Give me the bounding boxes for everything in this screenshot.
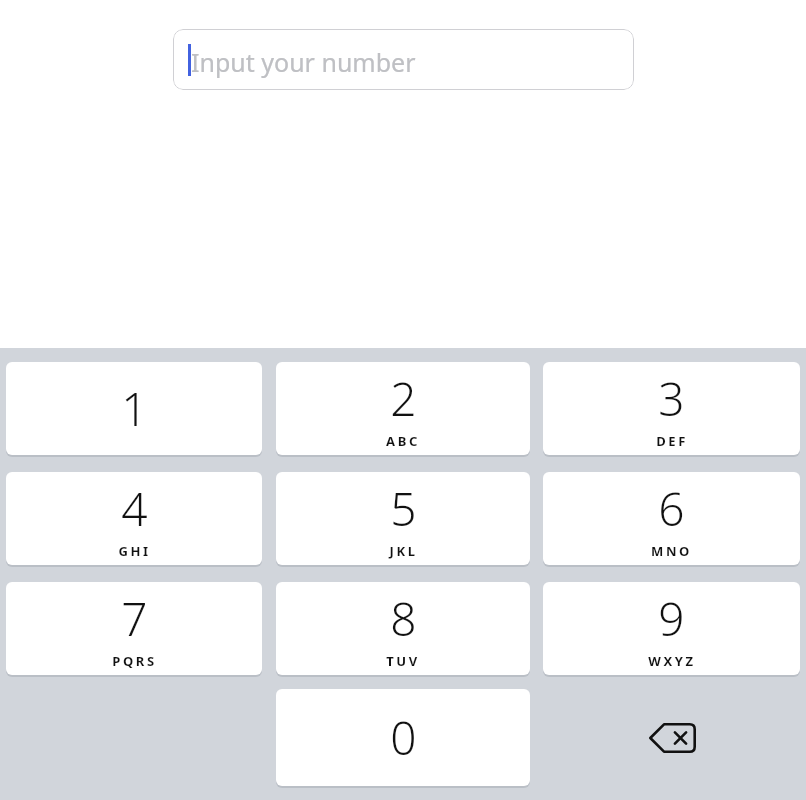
button[interactable]: 0 — [276, 689, 530, 786]
button[interactable]: 8 — [276, 582, 530, 675]
staticText: GHI — [118, 542, 151, 560]
staticText: 0 — [390, 706, 417, 769]
staticText: 8 — [390, 587, 417, 650]
staticText: 1 — [121, 377, 148, 440]
button[interactable]: 2 — [276, 362, 530, 455]
button[interactable]: 3 — [543, 362, 800, 455]
button[interactable]: 7 — [6, 582, 262, 675]
staticText: 5 — [390, 477, 417, 540]
button[interactable]: 9 — [543, 582, 800, 675]
button[interactable]: 1 — [6, 362, 262, 455]
button[interactable]: Backspace — [543, 689, 800, 786]
staticText: 4 — [121, 477, 148, 540]
staticText: 2 — [390, 367, 417, 430]
staticText: 6 — [658, 477, 685, 540]
staticText: MNO — [651, 542, 692, 560]
staticText: DEF — [656, 432, 688, 450]
button[interactable]: Input your number — [173, 29, 634, 90]
staticText: 9 — [658, 587, 685, 650]
button[interactable]: 5 — [276, 472, 530, 565]
staticText: ABC — [386, 432, 420, 450]
staticText: 3 — [658, 367, 685, 430]
button[interactable]: 4 — [6, 472, 262, 565]
staticText: TUV — [386, 652, 420, 670]
button[interactable]: 6 — [543, 472, 800, 565]
staticText: JKL — [389, 542, 418, 560]
staticText: PQRS — [112, 652, 157, 670]
staticText: WXYZ — [648, 652, 696, 670]
staticText: 7 — [121, 587, 148, 650]
staticText: Input your number — [191, 45, 416, 79]
